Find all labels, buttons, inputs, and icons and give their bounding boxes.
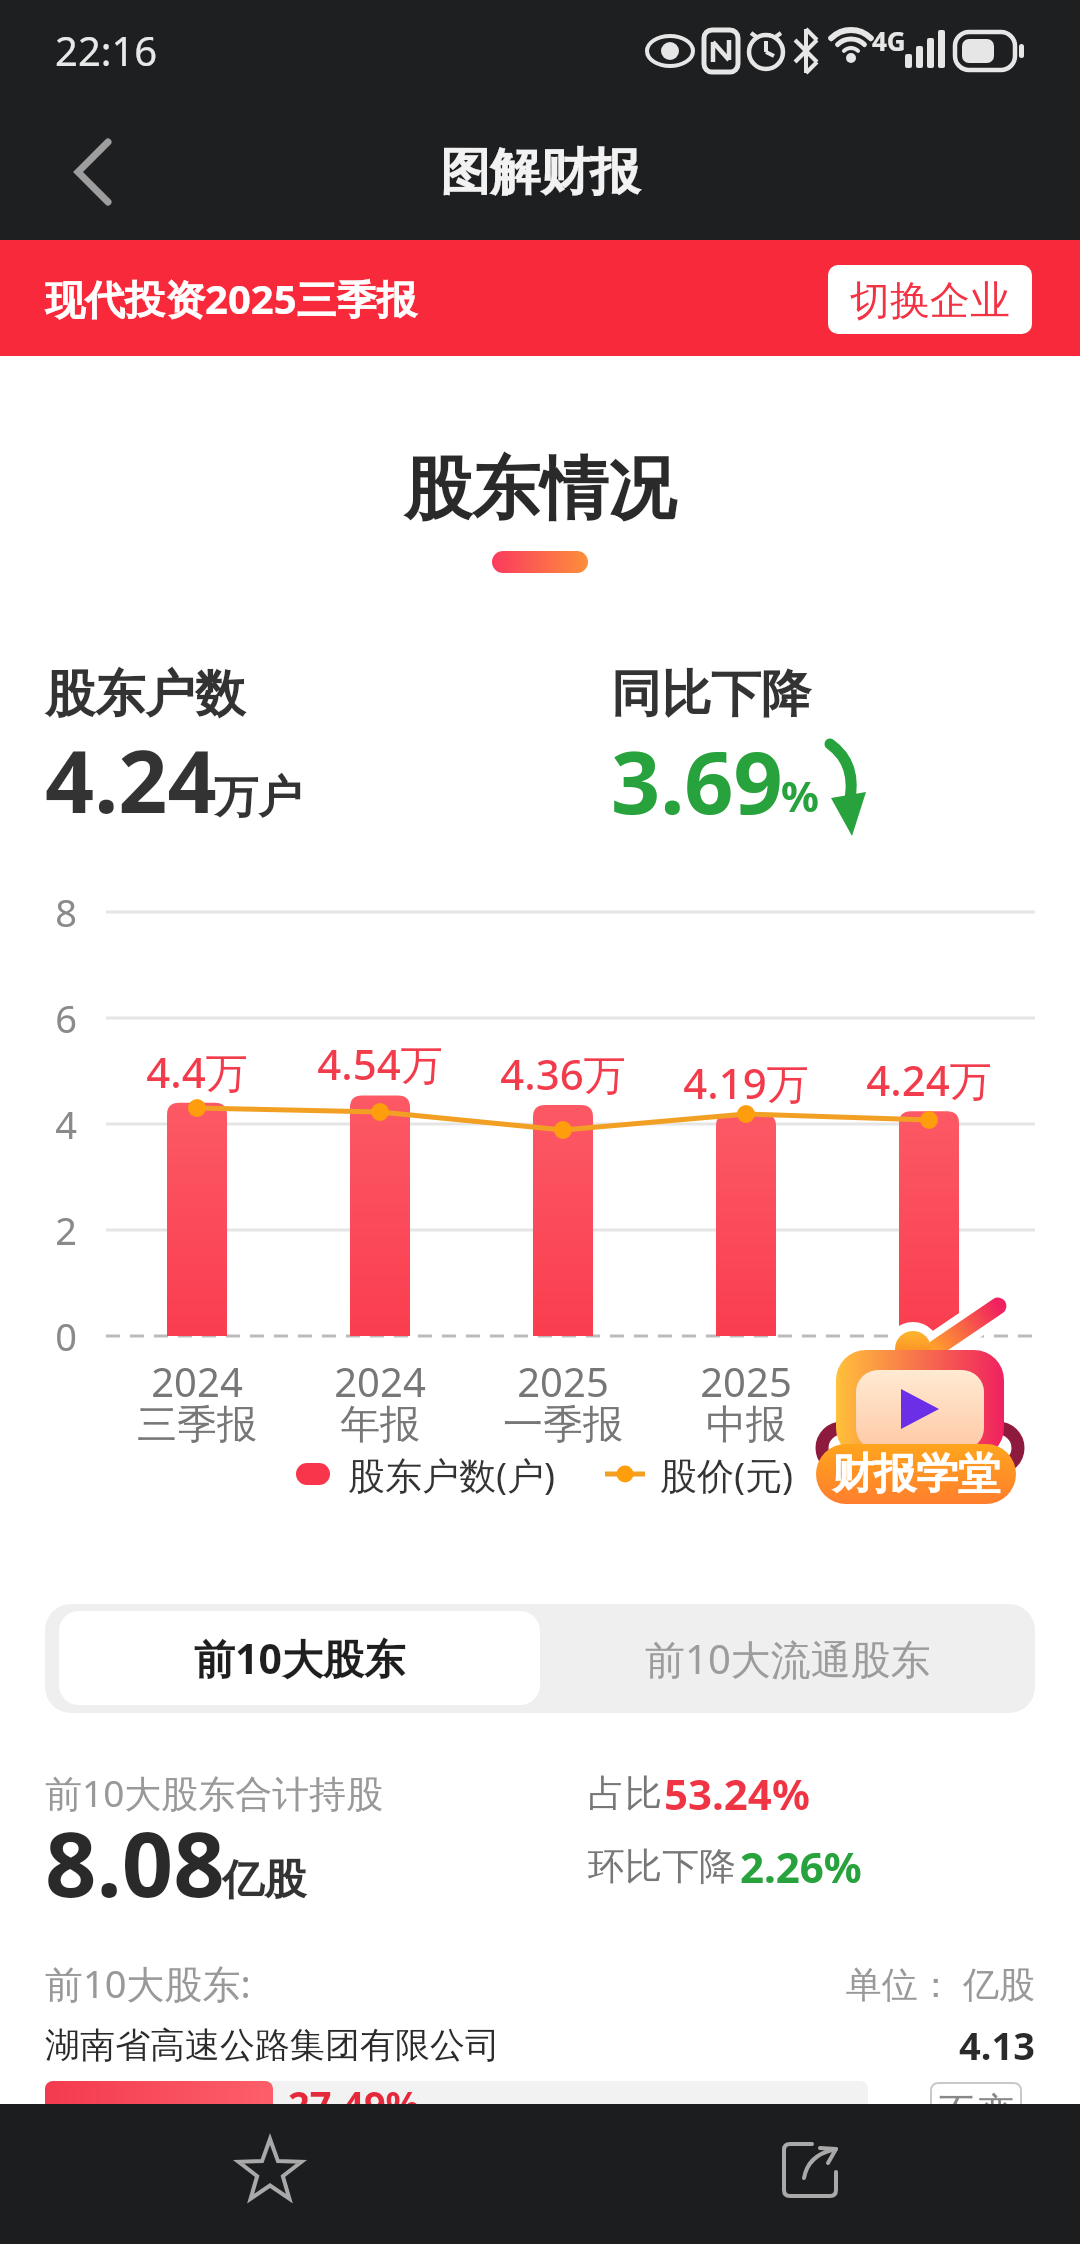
staticText: % [781, 767, 819, 824]
staticText: 单位： 亿股 [845, 1959, 1035, 2008]
button[interactable]: 不变 [930, 2082, 1022, 2142]
staticText: 中报 [706, 1399, 786, 1449]
button[interactable] [800, 1295, 1030, 1515]
staticText: 3.69 [611, 722, 783, 839]
staticText: 前10大流通股东 [645, 1631, 931, 1686]
staticText: 三季报 [137, 1399, 257, 1449]
staticText: 股东情况 [404, 447, 676, 533]
staticText: 27.49% [288, 2078, 420, 2130]
staticText: 股价(元) [660, 1449, 794, 1500]
staticText: 2025 [517, 1354, 609, 1408]
staticText: 22:16 [55, 23, 158, 77]
staticText: 2 [55, 1204, 77, 1256]
staticText: 4.36万 [500, 1045, 626, 1102]
staticText: 4G [872, 23, 906, 58]
staticText: 2024 [151, 1354, 243, 1408]
staticText: 不变 [938, 2088, 1014, 2136]
staticText: 0 [55, 1310, 77, 1362]
staticText: 2024 [334, 1354, 426, 1408]
staticText: 股东户数 [45, 663, 245, 726]
staticText: 年报 [340, 1399, 420, 1449]
staticText: 8 [55, 886, 77, 938]
staticText: 4.24万 [866, 1051, 992, 1108]
staticText: 财报学堂 [832, 1448, 1000, 1501]
staticText: 4.19万 [683, 1054, 809, 1111]
staticText: 湖南省高速公路集团有限公司 [45, 2023, 500, 2067]
button[interactable] [740, 2120, 880, 2230]
staticText: 4.24 [45, 721, 217, 838]
button[interactable]: 切换企业 [828, 265, 1032, 334]
button[interactable]: 前10大流通股东 [540, 1611, 1035, 1705]
staticText: 切换企业 [850, 275, 1010, 325]
staticText: 万户 [214, 770, 302, 825]
staticText: 53.24% [664, 1765, 810, 1822]
staticText: 4 [55, 1098, 77, 1150]
button[interactable]: 前10大股东 [59, 1611, 540, 1705]
staticText: 2.26% [740, 1838, 862, 1895]
staticText: 前10大股东合计持股 [45, 1767, 384, 1818]
staticText: 2025 [700, 1354, 792, 1408]
staticText: 4.54万 [317, 1035, 443, 1092]
staticText: 一季报 [503, 1399, 623, 1449]
staticText: 前10大股东 [194, 1630, 405, 1686]
staticText: 2025 [883, 1354, 975, 1408]
button[interactable] [200, 2120, 340, 2230]
staticText: 环比下降 [588, 1843, 736, 1890]
button[interactable] [50, 135, 140, 215]
staticText: 前10大股东: [45, 1957, 251, 2009]
staticText: 亿股 [222, 1854, 306, 1907]
staticText: 占比 [588, 1770, 662, 1817]
staticText: 三季报 [869, 1399, 989, 1449]
staticText: 股东户数(户) [348, 1449, 556, 1500]
staticText: 6 [55, 992, 77, 1044]
staticText: 4.13 [959, 2019, 1035, 2071]
staticText: 4.4万 [146, 1043, 248, 1100]
staticText: 图解财报 [440, 141, 640, 204]
staticText: 现代投资2025三季报 [45, 271, 417, 326]
staticText: 8.08 [45, 1801, 225, 1924]
staticText: 同比下降 [611, 663, 811, 726]
